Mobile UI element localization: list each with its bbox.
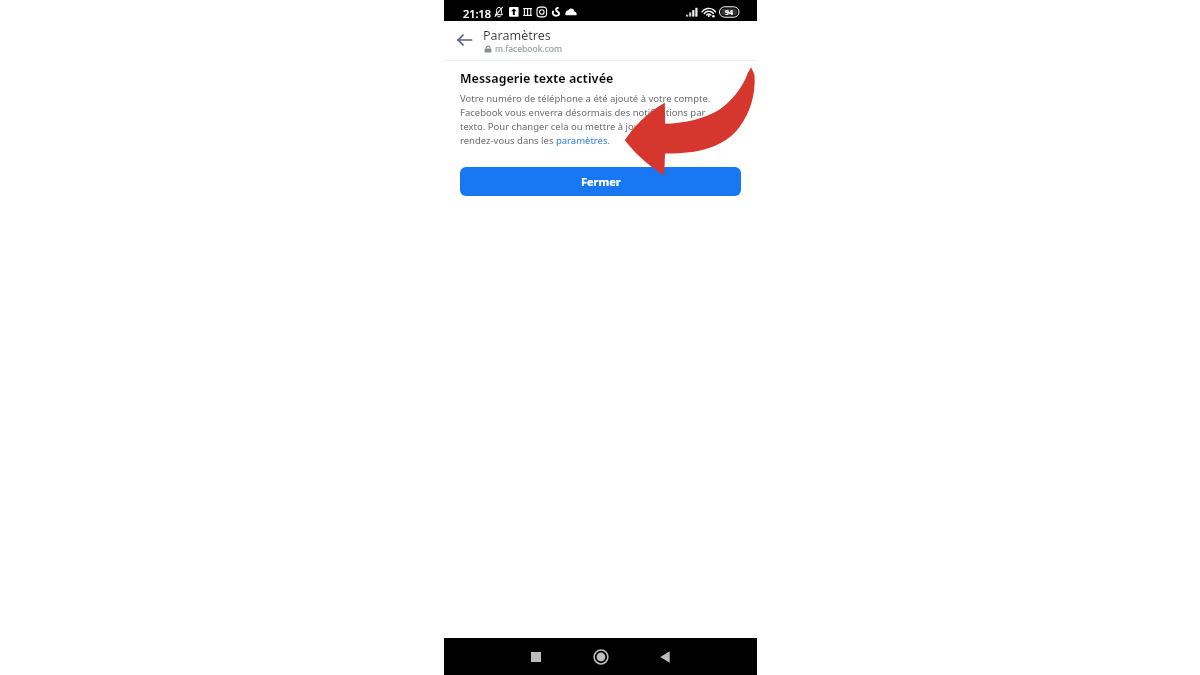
- button[interactable]: Back: [651, 643, 679, 671]
- button[interactable]: Recent apps: [522, 643, 550, 671]
- staticText: m.facebook.com: [495, 43, 563, 55]
- staticText: Fermer: [581, 174, 621, 189]
- staticText: 21:18: [463, 6, 492, 21]
- staticText: Paramètres: [483, 27, 551, 44]
- staticText: 94: [725, 8, 734, 18]
- button[interactable]: Back: [452, 27, 478, 53]
- staticText: Votre numéro de téléphone a été ajouté à…: [460, 92, 718, 147]
- button[interactable]: Home: [587, 643, 615, 671]
- button[interactable]: Fermer: [460, 167, 741, 196]
- staticText: Messagerie texte activée: [460, 70, 614, 87]
